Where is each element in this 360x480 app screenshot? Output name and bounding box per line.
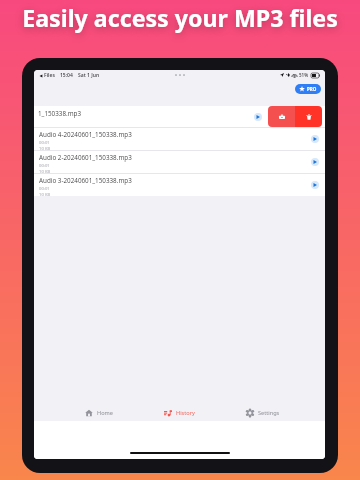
staticText: Audio 4-20240601_150338.mp3 [39, 130, 132, 139]
staticText: Settings [258, 409, 280, 417]
button[interactable]: Play [309, 179, 320, 190]
button[interactable]: Play [309, 156, 320, 167]
staticText: Sat 1 Jun [78, 72, 100, 79]
staticText: Files [44, 72, 55, 79]
button[interactable]: Home [79, 406, 119, 420]
button[interactable]: Settings [240, 406, 286, 420]
staticText: 10 KB [39, 169, 51, 173]
button[interactable]: PRO [295, 84, 321, 94]
staticText: Audio 2-20240601_150338.mp3 [39, 153, 132, 162]
button[interactable]: Audio 3-20240601_150338.mp3 [34, 173, 325, 196]
staticText: 51% [299, 72, 309, 78]
button[interactable]: Audio 4-20240601_150338.mp3 [34, 127, 325, 150]
staticText: Home [97, 409, 113, 417]
button[interactable]: Audio 2-20240601_150338.mp3 [34, 150, 325, 173]
staticText: 1_150338.mp3 [38, 109, 252, 118]
button[interactable]: Play [252, 111, 263, 122]
staticText: Easily access your MP3 files [0, 2, 360, 34]
staticText: 00:01 [39, 140, 50, 146]
button[interactable]: Play [309, 133, 320, 144]
staticText: 15:04 [60, 72, 73, 79]
staticText: 10 KB [39, 146, 51, 150]
staticText: Audio 3-20240601_150338.mp3 [39, 176, 132, 185]
staticText: PRO [307, 86, 317, 92]
staticText: 00:01 [39, 186, 50, 192]
staticText: 00:01 [39, 163, 50, 169]
button[interactable]: Save [268, 106, 295, 127]
button[interactable]: History [158, 406, 201, 420]
staticText: 10 KB [39, 192, 51, 196]
staticText: History [176, 409, 195, 417]
button[interactable]: Delete [295, 106, 322, 127]
